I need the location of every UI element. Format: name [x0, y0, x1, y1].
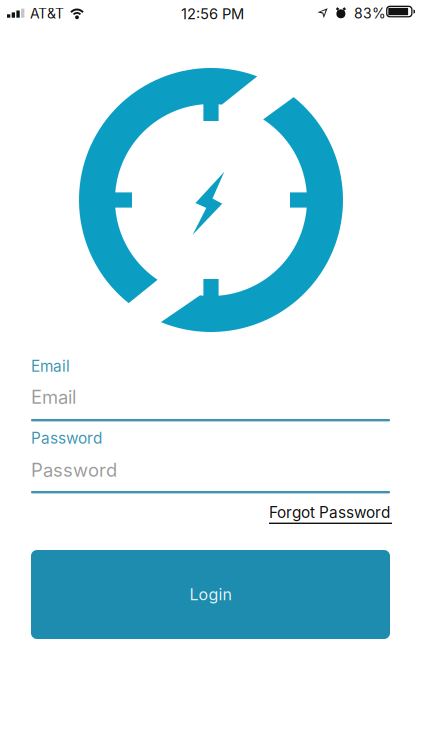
staticText: Email: [31, 357, 70, 376]
staticText: 12:56 PM: [181, 5, 244, 23]
staticText: 83%: [354, 5, 386, 22]
staticText: Forgot Password: [269, 503, 390, 522]
staticText: Login: [189, 585, 231, 604]
staticText: AT&T: [30, 5, 64, 22]
staticText: Password: [31, 429, 102, 448]
staticText: Password: [31, 459, 117, 481]
button[interactable]: Forgot Password: [269, 504, 399, 524]
staticText: Email: [31, 386, 76, 408]
button[interactable]: Login: [31, 550, 390, 639]
